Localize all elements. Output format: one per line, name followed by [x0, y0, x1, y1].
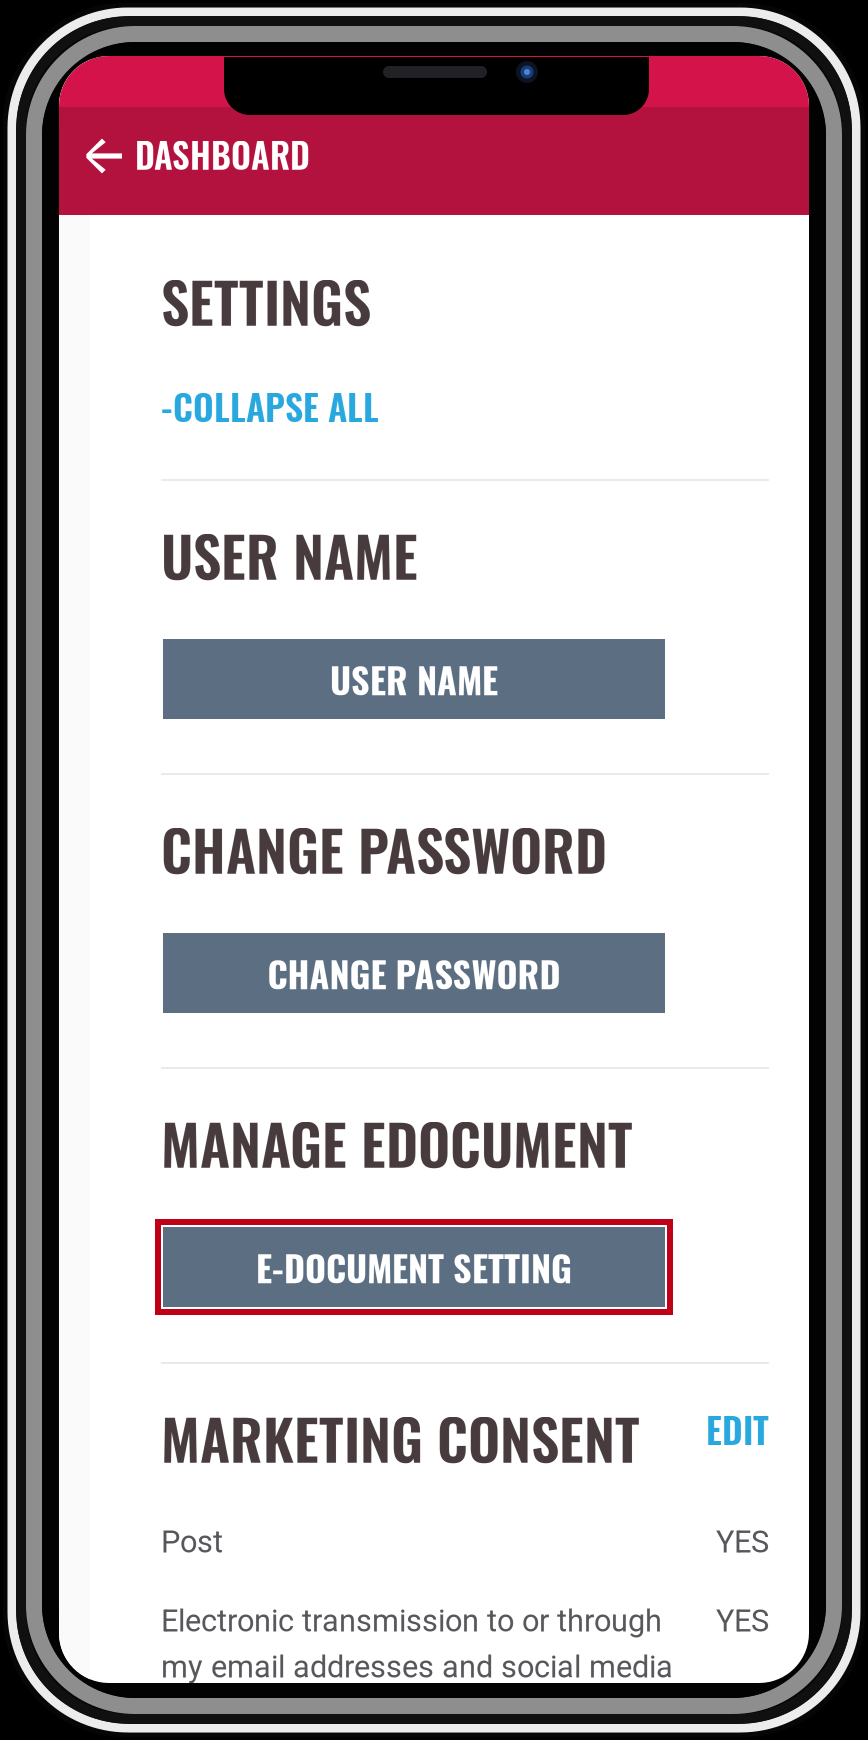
button[interactable]: E-DOCUMENT SETTING [163, 1227, 665, 1307]
staticText: YES [716, 1603, 769, 1639]
staticText: MANAGE EDOCUMENT [161, 1101, 633, 1184]
staticText: E-DOCUMENT SETTING [256, 1240, 572, 1294]
staticText: DASHBOARD [135, 128, 310, 180]
staticText: USER NAME [161, 513, 418, 596]
staticText: YES [716, 1524, 769, 1560]
staticText: CHANGE PASSWORD [267, 946, 560, 1000]
staticText: MARKETING CONSENT [161, 1396, 640, 1479]
staticText: USER NAME [330, 652, 498, 706]
button[interactable]: CHANGE PASSWORD [163, 933, 665, 1013]
staticText: Electronic transmission to or through my… [161, 1603, 673, 1685]
button[interactable]: USER NAME [163, 639, 665, 719]
button[interactable]: EDIT [706, 1402, 769, 1455]
button[interactable]: -COLLAPSE ALL [161, 379, 379, 432]
staticText: CHANGE PASSWORD [161, 807, 607, 890]
staticText: Post [161, 1524, 223, 1560]
staticText: SETTINGS [161, 259, 371, 342]
button[interactable]: DASHBOARD [83, 107, 310, 215]
staticText: EDIT [706, 1402, 769, 1455]
staticText: -COLLAPSE ALL [161, 379, 379, 432]
